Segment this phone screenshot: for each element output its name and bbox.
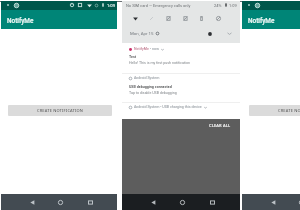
staticText: • now <box>150 47 159 51</box>
button[interactable]: Quick setting <box>129 12 141 24</box>
button[interactable]: Quick setting <box>162 12 174 24</box>
button[interactable]: Expand <box>225 29 234 38</box>
staticText: 1:09 <box>229 3 237 8</box>
button[interactable]: Quick setting <box>212 12 224 24</box>
staticText: Tap to disable USB debugging <box>129 91 177 95</box>
button[interactable]: Quick setting <box>145 12 157 24</box>
button[interactable]: Settings <box>205 29 214 38</box>
staticText: CREATE NOTIFICATION <box>37 108 84 113</box>
button[interactable]: Back <box>26 196 38 208</box>
button[interactable]: CREATE NOTIFICATION <box>8 105 112 116</box>
staticText: NotifyMe <box>134 47 149 51</box>
staticText: Mon, Apr 15 <box>130 31 154 36</box>
staticText: NotifyMe <box>7 17 34 25</box>
button[interactable]: Recent apps <box>206 196 218 208</box>
button[interactable]: Home <box>54 196 66 208</box>
staticText: NotifyMe <box>248 17 275 25</box>
staticText: 24% <box>214 3 222 8</box>
staticText: Android System • USB charging this devic… <box>134 105 202 109</box>
button[interactable]: Android System <box>122 73 240 102</box>
staticText: No SIM card — Emergency calls only <box>126 3 191 8</box>
staticText: Android System <box>134 76 160 80</box>
button[interactable]: Home <box>176 196 188 208</box>
button[interactable]: NotifyMe <box>122 43 240 73</box>
button[interactable]: CLEAR ALL <box>205 120 235 131</box>
button[interactable]: CREATE NOTIFICATION <box>249 105 300 116</box>
button[interactable]: Quick setting <box>195 12 207 24</box>
button[interactable]: Quick setting <box>179 12 191 24</box>
button[interactable]: Back <box>147 196 159 208</box>
staticText: CLEAR ALL <box>209 123 231 128</box>
staticText: CREATE NOTIFICATION <box>278 108 300 113</box>
staticText: 1:09 <box>107 3 116 8</box>
staticText: Test <box>129 55 137 59</box>
button[interactable]: Back <box>267 196 279 208</box>
button[interactable]: Home <box>295 196 300 208</box>
button[interactable]: Android System • USB charging this devic… <box>122 102 240 118</box>
button[interactable]: Recent apps <box>84 196 96 208</box>
staticText: USB debugging connected <box>129 85 172 89</box>
staticText: Hello! This is my first push notificatio… <box>129 61 190 65</box>
